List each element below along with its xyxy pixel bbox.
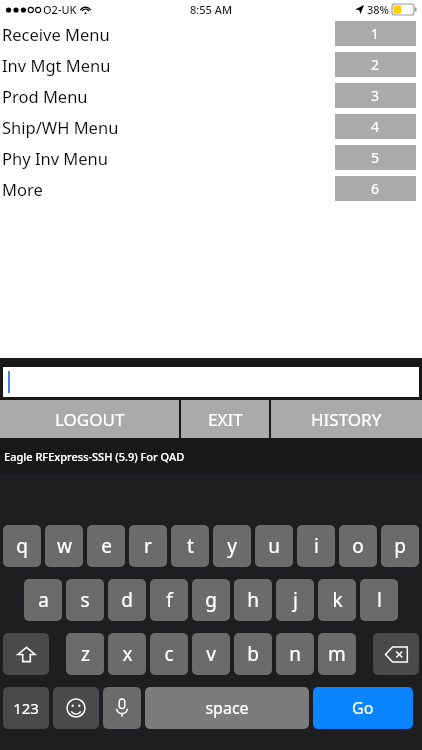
staticText: x: [122, 641, 133, 667]
staticText: a: [38, 587, 49, 613]
staticText: 6: [371, 179, 380, 198]
staticText: k: [332, 587, 343, 613]
staticText: i: [314, 533, 319, 559]
staticText: 123: [13, 698, 39, 718]
staticText: q: [16, 533, 28, 559]
staticText: p: [394, 533, 406, 559]
button[interactable]: f: [150, 579, 188, 621]
staticText: 38%: [367, 2, 389, 17]
button[interactable]: z: [66, 633, 104, 675]
button[interactable]: l: [360, 579, 398, 621]
button[interactable]: x: [108, 633, 146, 675]
staticText: Inv Mgt Menu: [2, 54, 111, 76]
button[interactable]: k: [318, 579, 356, 621]
staticText: 1: [371, 24, 380, 43]
button[interactable]: i: [297, 525, 335, 567]
staticText: e: [101, 533, 112, 559]
button[interactable]: c: [150, 633, 188, 675]
button[interactable]: g: [192, 579, 230, 621]
staticText: j: [293, 587, 298, 613]
staticText: Go: [352, 697, 374, 719]
staticText: d: [121, 587, 133, 613]
staticText: r: [144, 533, 152, 559]
staticText: HISTORY: [311, 408, 382, 431]
button[interactable]: v: [192, 633, 230, 675]
button[interactable]: Delete: [373, 633, 419, 675]
button[interactable]: space: [145, 687, 309, 729]
staticText: LOGOUT: [55, 408, 125, 431]
staticText: y: [227, 533, 237, 559]
button[interactable]: a: [24, 579, 62, 621]
button[interactable]: More: [0, 173, 422, 204]
button[interactable]: s: [66, 579, 104, 621]
staticText: z: [81, 641, 90, 667]
button[interactable]: Phy Inv Menu: [0, 142, 422, 173]
staticText: f: [166, 587, 173, 613]
staticText: v: [206, 641, 216, 667]
button[interactable]: q: [3, 525, 41, 567]
staticText: l: [377, 587, 382, 613]
button[interactable]: o: [339, 525, 377, 567]
button[interactable]: b: [234, 633, 272, 675]
button[interactable]: Prod Menu: [0, 80, 422, 111]
staticText: s: [80, 587, 90, 613]
staticText: EXIT: [208, 408, 243, 431]
button[interactable]: u: [255, 525, 293, 567]
staticText: n: [289, 641, 301, 667]
button[interactable]: HISTORY: [271, 400, 422, 438]
button[interactable]: d: [108, 579, 146, 621]
staticText: Eagle RFExpress-SSH (5.9) For QAD: [4, 449, 185, 464]
button[interactable]: e: [87, 525, 125, 567]
button[interactable]: Dictate: [103, 687, 141, 729]
staticText: 5: [371, 148, 380, 167]
button[interactable]: Emoji: [53, 687, 99, 729]
button[interactable]: y: [213, 525, 251, 567]
staticText: c: [164, 641, 174, 667]
staticText: More: [2, 178, 43, 200]
staticText: 8:55 AM: [190, 2, 233, 17]
staticText: space: [205, 697, 249, 719]
staticText: u: [268, 533, 280, 559]
button[interactable]: j: [276, 579, 314, 621]
button[interactable]: LOGOUT: [0, 400, 179, 438]
button[interactable]: t: [171, 525, 209, 567]
staticText: O2-UK: [43, 2, 77, 17]
button[interactable]: [3, 367, 419, 397]
button[interactable]: 123: [3, 687, 49, 729]
staticText: m: [328, 641, 346, 667]
staticText: t: [187, 533, 194, 559]
staticText: Ship/WH Menu: [2, 116, 119, 138]
staticText: 4: [371, 117, 380, 136]
button[interactable]: Receive Menu: [0, 18, 422, 49]
button[interactable]: h: [234, 579, 272, 621]
staticText: Prod Menu: [2, 85, 88, 107]
button[interactable]: Inv Mgt Menu: [0, 49, 422, 80]
button[interactable]: r: [129, 525, 167, 567]
staticText: Phy Inv Menu: [2, 147, 109, 169]
staticText: w: [57, 533, 72, 559]
button[interactable]: w: [45, 525, 83, 567]
button[interactable]: n: [276, 633, 314, 675]
staticText: 3: [371, 86, 380, 105]
button[interactable]: m: [318, 633, 356, 675]
staticText: g: [205, 587, 217, 613]
staticText: h: [247, 587, 259, 613]
button[interactable]: p: [381, 525, 419, 567]
staticText: Receive Menu: [2, 23, 110, 45]
button[interactable]: EXIT: [181, 400, 269, 438]
button[interactable]: Go: [313, 687, 413, 729]
button[interactable]: Ship/WH Menu: [0, 111, 422, 142]
button[interactable]: Shift: [3, 633, 49, 675]
staticText: b: [247, 641, 259, 667]
staticText: 2: [371, 55, 380, 74]
staticText: o: [352, 533, 364, 559]
